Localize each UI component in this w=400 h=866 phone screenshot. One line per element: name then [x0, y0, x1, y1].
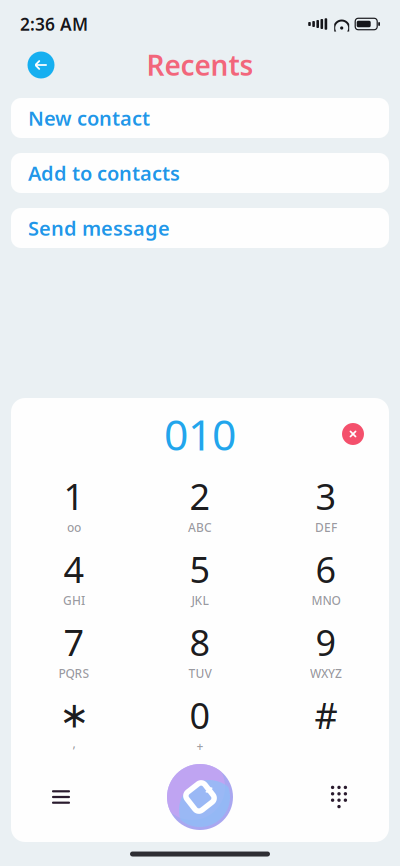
staticText: Send message [28, 215, 170, 241]
staticText: MNO [311, 592, 340, 608]
staticText: 010 [164, 406, 236, 462]
staticText: Recents [146, 46, 253, 84]
button[interactable]: Add to contacts [11, 153, 389, 193]
staticText: 4 [63, 545, 84, 593]
staticText: TUV [188, 665, 211, 681]
button[interactable]: 2 [137, 466, 263, 539]
staticText: # [314, 691, 337, 739]
staticText: ABC [188, 519, 212, 535]
button[interactable]: New contact [11, 98, 389, 138]
button[interactable]: 9 [263, 612, 389, 685]
button[interactable]: 0 [137, 685, 263, 758]
staticText: WXYZ [310, 665, 342, 681]
staticText: New contact [28, 105, 150, 131]
staticText: oo [67, 519, 81, 535]
button[interactable]: Menu [30, 767, 92, 827]
button[interactable]: Back [19, 45, 63, 85]
staticText: 2 [189, 472, 210, 520]
staticText: ∗ [59, 695, 89, 735]
button[interactable]: Send message [11, 208, 389, 248]
button[interactable]: ∗ [11, 685, 137, 758]
staticText: 5 [189, 545, 210, 593]
button[interactable]: 8 [137, 612, 263, 685]
button[interactable]: 1 [11, 466, 137, 539]
staticText: 7 [63, 618, 84, 666]
staticText: JKL [191, 592, 208, 608]
staticText: 9 [315, 618, 336, 666]
button[interactable]: # [263, 685, 389, 758]
button[interactable]: 7 [11, 612, 137, 685]
staticText: DEF [315, 519, 337, 535]
button[interactable]: Call [161, 758, 239, 836]
staticText: , [72, 735, 75, 751]
button[interactable]: Keypad [308, 767, 370, 827]
staticText: 3 [315, 472, 336, 520]
staticText: GHI [63, 592, 85, 608]
button[interactable]: 6 [263, 539, 389, 612]
staticText: + [196, 738, 203, 754]
button[interactable]: 3 [263, 466, 389, 539]
button[interactable]: 4 [11, 539, 137, 612]
staticText: PQRS [58, 665, 89, 681]
button[interactable]: Delete [331, 412, 375, 456]
staticText: 0 [189, 691, 210, 739]
staticText: 2:36 AM [20, 12, 88, 35]
button[interactable]: 5 [137, 539, 263, 612]
staticText: 6 [315, 545, 336, 593]
staticText: Add to contacts [28, 160, 180, 186]
staticText: 8 [189, 618, 210, 666]
staticText: 1 [63, 472, 84, 520]
